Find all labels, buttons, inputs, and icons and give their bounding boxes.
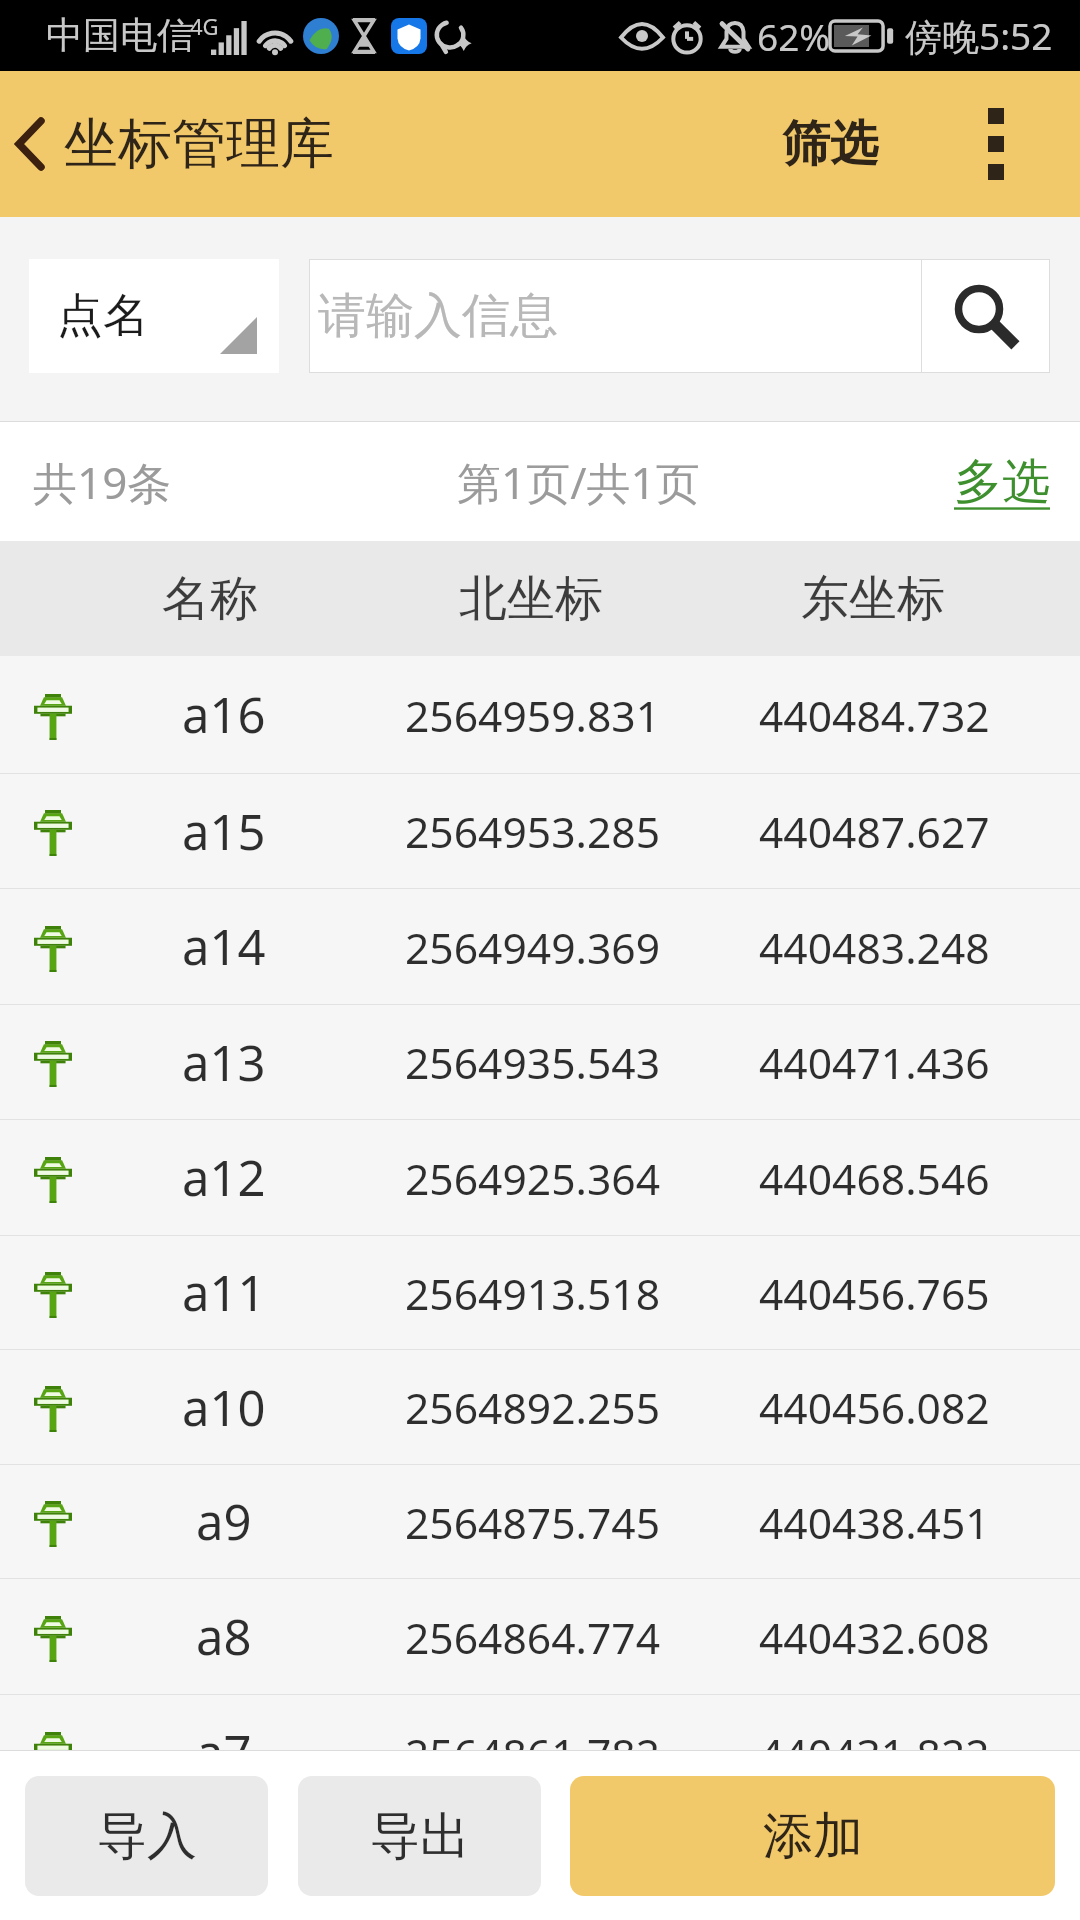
staticText: 440483.248 — [759, 918, 990, 976]
staticText: 筛选 — [782, 114, 878, 174]
staticText: a10 — [182, 1374, 266, 1441]
staticText: 62% — [757, 11, 831, 61]
staticText: 440468.546 — [759, 1149, 990, 1207]
staticText: 440471.436 — [759, 1033, 990, 1091]
button[interactable]: a9 — [0, 1465, 1080, 1578]
staticText: 2564953.285 — [405, 802, 661, 860]
button[interactable]: Back — [0, 71, 334, 217]
button[interactable]: a14 — [0, 889, 1080, 1004]
button[interactable]: 筛选 — [774, 71, 886, 217]
staticText: 坐标管理库 — [64, 110, 334, 178]
button[interactable]: 导入 — [25, 1776, 268, 1896]
staticText: 440431.822 — [759, 1724, 990, 1750]
button[interactable]: 添加 — [570, 1776, 1055, 1896]
button[interactable]: 多选 — [926, 434, 1080, 530]
staticText: 2564892.255 — [405, 1378, 661, 1436]
button[interactable]: Search — [922, 259, 1050, 373]
button[interactable]: a12 — [0, 1120, 1080, 1235]
button[interactable]: a15 — [0, 774, 1080, 888]
staticText: 4G — [190, 11, 219, 41]
button[interactable]: More options — [911, 71, 1080, 217]
staticText: a8 — [196, 1603, 252, 1670]
staticText: 2564875.745 — [405, 1493, 661, 1551]
staticText: 北坐标 — [459, 569, 603, 629]
staticText: 导出 — [370, 1805, 470, 1868]
staticText: a9 — [196, 1488, 252, 1555]
staticText: 名称 — [162, 569, 258, 629]
staticText: 440456.765 — [759, 1264, 990, 1322]
staticText: 2564864.774 — [405, 1608, 661, 1666]
staticText: 2564861.782 — [405, 1724, 661, 1750]
button[interactable]: a8 — [0, 1579, 1080, 1694]
button[interactable]: 导出 — [298, 1776, 541, 1896]
staticText: 东坐标 — [801, 569, 945, 629]
staticText: 导入 — [97, 1805, 197, 1868]
button[interactable]: a7 — [0, 1695, 1080, 1750]
staticText: a7 — [196, 1719, 252, 1750]
staticText: 点名 — [57, 287, 149, 345]
button[interactable]: a11 — [0, 1236, 1080, 1349]
staticText: 共19条 — [33, 452, 172, 512]
staticText: a11 — [182, 1259, 266, 1326]
staticText: a15 — [182, 798, 266, 865]
staticText: 2564913.518 — [405, 1264, 661, 1322]
staticText: 2564949.369 — [405, 918, 661, 976]
staticText: 第1页/共1页 — [457, 452, 700, 512]
staticText: 多选 — [954, 452, 1050, 512]
staticText: a13 — [182, 1029, 266, 1096]
staticText: a12 — [182, 1144, 266, 1211]
staticText: 440456.082 — [759, 1378, 990, 1436]
button[interactable]: 点名 — [29, 259, 279, 373]
staticText: a14 — [182, 913, 266, 980]
staticText: 440432.608 — [759, 1608, 990, 1666]
button[interactable]: a13 — [0, 1005, 1080, 1119]
staticText: 440487.627 — [759, 802, 990, 860]
staticText: a16 — [182, 681, 266, 748]
other: Back — [16, 118, 44, 170]
button[interactable]: a10 — [0, 1350, 1080, 1464]
staticText: 中国电信 — [46, 12, 194, 59]
staticText: 傍晚5:52 — [905, 10, 1053, 61]
staticText: 2564935.543 — [405, 1033, 661, 1091]
staticText: 440438.451 — [759, 1493, 990, 1551]
staticText: 440484.732 — [759, 686, 990, 744]
staticText: 添加 — [763, 1805, 863, 1868]
button[interactable]: a16 — [0, 656, 1080, 773]
staticText: 请输入信息 — [318, 286, 921, 346]
staticText: 2564959.831 — [405, 686, 661, 744]
staticText: 2564925.364 — [405, 1149, 661, 1207]
